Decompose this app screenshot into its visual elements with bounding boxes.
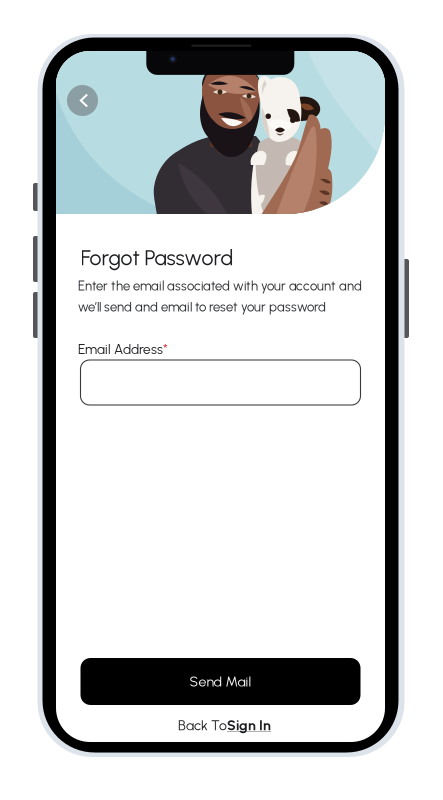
staticText: Sign In [227, 717, 271, 734]
staticText: Back To [178, 717, 227, 734]
staticText: Forgot Password [80, 245, 233, 270]
staticText: we’ll send and email to reset your passw… [78, 299, 326, 315]
staticText: Send Mail [189, 673, 251, 690]
button[interactable]: Back To [178, 717, 271, 734]
staticText: Email Address [78, 341, 163, 357]
staticText: Enter the email associated with your acc… [78, 278, 362, 294]
staticText: * [163, 341, 168, 357]
button[interactable]: Back [67, 85, 98, 116]
button[interactable]: Send Mail [80, 658, 360, 705]
